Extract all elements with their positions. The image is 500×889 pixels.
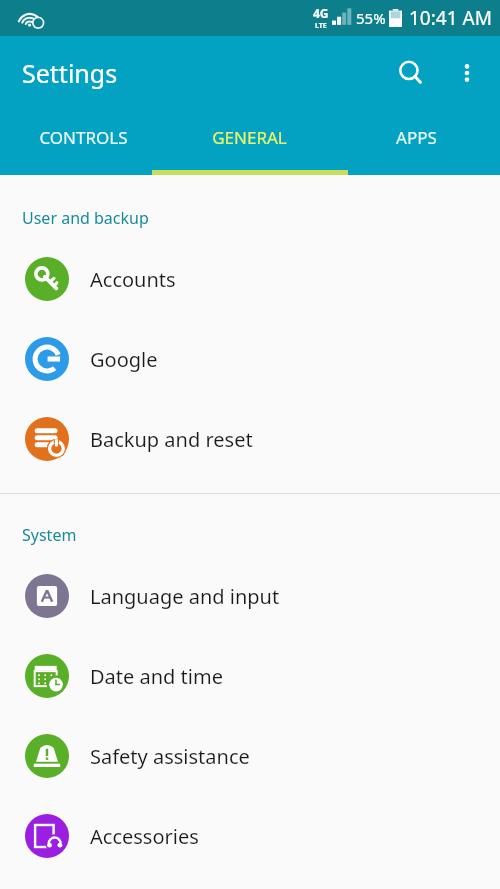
button[interactable]: GENERAL (166, 110, 333, 175)
button[interactable]: Backup and reset (0, 399, 500, 479)
staticText: 55% (356, 8, 386, 28)
button[interactable]: CONTROLS (0, 110, 166, 175)
button[interactable]: Safety assistance (0, 716, 500, 796)
staticText: 4G (313, 5, 329, 21)
button[interactable]: Date and time (0, 636, 500, 716)
staticText: Accessories (90, 823, 199, 850)
button[interactable]: APPS (333, 110, 500, 175)
staticText: GENERAL (212, 126, 287, 149)
button[interactable]: Language and input (0, 556, 500, 636)
button[interactable]: Search (383, 45, 439, 101)
staticText: Language and input (90, 583, 280, 610)
staticText: Backup and reset (90, 426, 253, 453)
button[interactable]: More options (439, 45, 495, 101)
staticText: Safety assistance (90, 743, 250, 770)
button[interactable]: Accessories (0, 796, 500, 876)
staticText: 10:41 AM (409, 5, 492, 31)
staticText: Accounts (90, 266, 176, 293)
button[interactable]: Google (0, 319, 500, 399)
staticText: APPS (396, 126, 437, 149)
staticText: Settings (22, 56, 118, 90)
staticText: Google (90, 346, 158, 373)
button[interactable]: Accounts (0, 239, 500, 319)
staticText: System (22, 524, 77, 546)
staticText: CONTROLS (39, 126, 128, 149)
staticText: Date and time (90, 663, 223, 690)
staticText: LTE (315, 21, 327, 31)
staticText: User and backup (22, 207, 149, 229)
